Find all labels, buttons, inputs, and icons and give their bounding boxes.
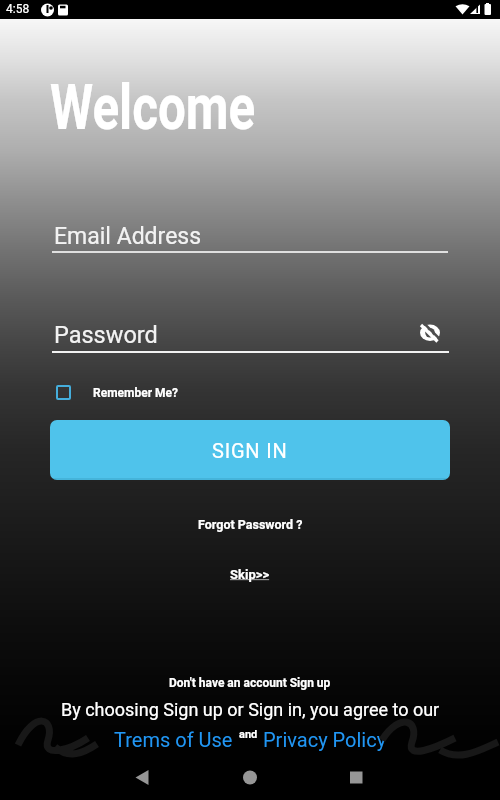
- button[interactable]: Remember Me?: [56, 385, 178, 400]
- button[interactable]: [415, 319, 445, 347]
- button[interactable]: Don't have an account Sign up: [169, 676, 331, 690]
- button[interactable]: Trems of Use: [114, 728, 233, 751]
- button[interactable]: Skip>>: [230, 567, 270, 582]
- button[interactable]: [125, 765, 157, 797]
- staticText: By choosing Sign up or Sign in, you agre…: [61, 699, 440, 720]
- button[interactable]: Forgot Password ?: [198, 517, 303, 532]
- staticText: Remember Me?: [93, 386, 178, 400]
- staticText: Email Address: [54, 223, 202, 250]
- button[interactable]: Password: [50, 312, 450, 356]
- button[interactable]: [340, 765, 372, 797]
- button[interactable]: Privacy Policy: [263, 728, 387, 751]
- staticText: Welcome: [50, 71, 256, 145]
- button[interactable]: [234, 765, 266, 797]
- staticText: and: [239, 728, 258, 741]
- staticText: SIGN IN: [212, 439, 288, 462]
- button[interactable]: SIGN IN: [50, 420, 450, 480]
- button[interactable]: Email Address: [50, 214, 450, 258]
- staticText: Password: [54, 321, 158, 349]
- staticText: 4:58: [6, 2, 30, 16]
